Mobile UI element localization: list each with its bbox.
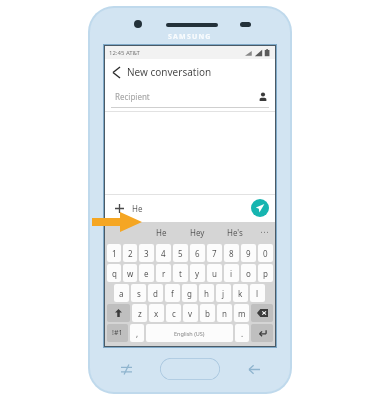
staticText: 12:45 AT&T [109,49,140,57]
staticText: p [263,268,268,279]
staticText: y [195,268,200,279]
staticText: English (US) [174,330,205,337]
button[interactable]: Backspace [251,304,273,322]
button[interactable]: He's [216,222,253,242]
button[interactable]: 6 [190,244,205,262]
staticText: He's [227,227,243,238]
button[interactable]: Recipient [105,85,275,107]
staticText: d [153,288,158,299]
staticText: r [162,268,166,279]
staticText: n [222,308,227,319]
button[interactable]: Enter [251,324,273,342]
button[interactable]: 8 [224,244,239,262]
staticText: 2 [128,248,133,259]
button[interactable]: He [143,222,179,242]
button[interactable]: Shift [107,304,130,322]
button[interactable]: 1 [107,244,121,262]
staticText: x [154,308,159,319]
button[interactable]: x [149,304,164,322]
button[interactable]: e [139,264,154,282]
button[interactable]: o [241,264,256,282]
button[interactable]: 3 [139,244,154,262]
staticText: z [138,308,142,319]
button[interactable]: u [207,264,222,282]
button[interactable]: d [148,284,163,302]
button[interactable]: Home [160,358,220,380]
button[interactable]: t [173,264,188,282]
staticText: u [212,268,217,279]
staticText: 3 [144,248,149,259]
button[interactable]: b [200,304,215,322]
button[interactable]: f [165,284,180,302]
button[interactable]: g [182,284,197,302]
staticText: , [136,328,139,339]
button[interactable]: r [156,264,171,282]
staticText: b [205,308,210,319]
staticText: v [188,308,193,319]
staticText: 9 [246,248,251,259]
button[interactable]: y [190,264,205,282]
staticText: He [156,227,167,238]
button[interactable]: q [107,264,121,282]
staticText: New conversation [127,65,212,79]
button[interactable]: z [132,304,147,322]
button[interactable]: English (US) [146,324,233,342]
button[interactable]: 4 [156,244,171,262]
staticText: j [222,288,225,299]
staticText: s [137,288,141,299]
staticText: ⋯ [260,227,269,237]
staticText: 5 [178,248,183,259]
button[interactable]: He [132,203,251,214]
button[interactable]: !#1 [107,324,128,342]
button[interactable]: j [216,284,231,302]
staticText: a [119,288,124,299]
button[interactable]: 5 [173,244,188,262]
button[interactable]: 0 [258,244,273,262]
staticText: q [112,268,117,279]
staticText: f [171,288,174,299]
staticText: e [144,268,149,279]
staticText: 1 [112,248,117,259]
button[interactable]: s [131,284,146,302]
staticText: 6 [195,248,200,259]
button[interactable]: Add attachment [111,200,127,216]
button[interactable]: n [217,304,232,322]
staticText: l [256,288,259,299]
button[interactable]: Send [251,199,269,217]
button[interactable]: Hey [179,222,216,242]
staticText: i [230,268,233,279]
staticText: Recipient [115,91,150,102]
staticText: h [204,288,209,299]
button[interactable]: More suggestions [253,222,275,242]
staticText: w [127,268,134,279]
button[interactable]: 9 [241,244,256,262]
button[interactable]: Navigate up [105,59,127,85]
staticText: k [238,288,243,299]
button[interactable]: a [114,284,129,302]
button[interactable]: Back [246,361,262,377]
button[interactable]: p [258,264,273,282]
button[interactable]: 2 [123,244,137,262]
staticText: 4 [161,248,166,259]
button[interactable]: , [130,324,144,342]
button[interactable]: 7 [207,244,222,262]
button[interactable]: m [234,304,249,322]
staticText: 8 [229,248,234,259]
staticText: SAMSUNG [168,32,212,42]
staticText: He [132,203,143,214]
staticText: 7 [212,248,217,259]
button[interactable]: w [123,264,137,282]
staticText: . [241,328,244,339]
button[interactable]: i [224,264,239,282]
staticText: m [238,308,246,319]
staticText: c [172,308,176,319]
button[interactable]: c [166,304,181,322]
button[interactable]: Recents [118,361,134,377]
button[interactable]: h [199,284,214,302]
button[interactable]: l [250,284,265,302]
staticText: 0 [263,248,268,259]
staticText: !#1 [112,328,123,338]
button[interactable]: v [183,304,198,322]
button[interactable]: . [235,324,249,342]
button[interactable]: k [233,284,248,302]
